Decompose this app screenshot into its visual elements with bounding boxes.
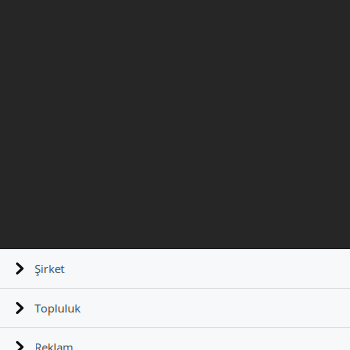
staticText: Reklam	[35, 339, 74, 350]
button[interactable]: Şirket	[0, 249, 350, 288]
button[interactable]: Topluluk	[0, 289, 350, 327]
staticText: Topluluk	[35, 300, 81, 316]
button[interactable]: Reklam	[0, 328, 350, 350]
staticText: Şirket	[35, 261, 65, 276]
